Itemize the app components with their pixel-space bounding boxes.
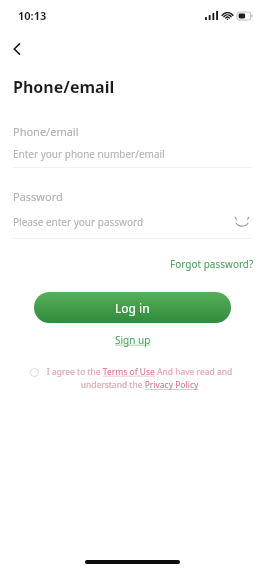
staticText: Enter your phone number/email [13, 147, 252, 161]
button[interactable]: I agree to the Terms of Use And have rea… [30, 366, 235, 391]
button[interactable]: Sign up [111, 330, 155, 350]
button[interactable]: Show password [232, 212, 252, 232]
staticText: Sign up [115, 333, 151, 347]
staticText: Log in [115, 300, 150, 316]
staticText: I agree to the Terms of Use And have rea… [44, 366, 235, 391]
staticText: Phone/email [13, 76, 115, 98]
staticText: Forgot password? [170, 257, 254, 271]
button[interactable]: Forgot password? [167, 254, 257, 274]
button[interactable]: Log in [34, 292, 231, 323]
staticText: 10:13 [18, 8, 47, 23]
staticText: Phone/email [13, 124, 79, 139]
staticText: Password [13, 189, 63, 204]
staticText: Please enter your password [13, 215, 232, 229]
button[interactable]: Back [0, 30, 36, 68]
